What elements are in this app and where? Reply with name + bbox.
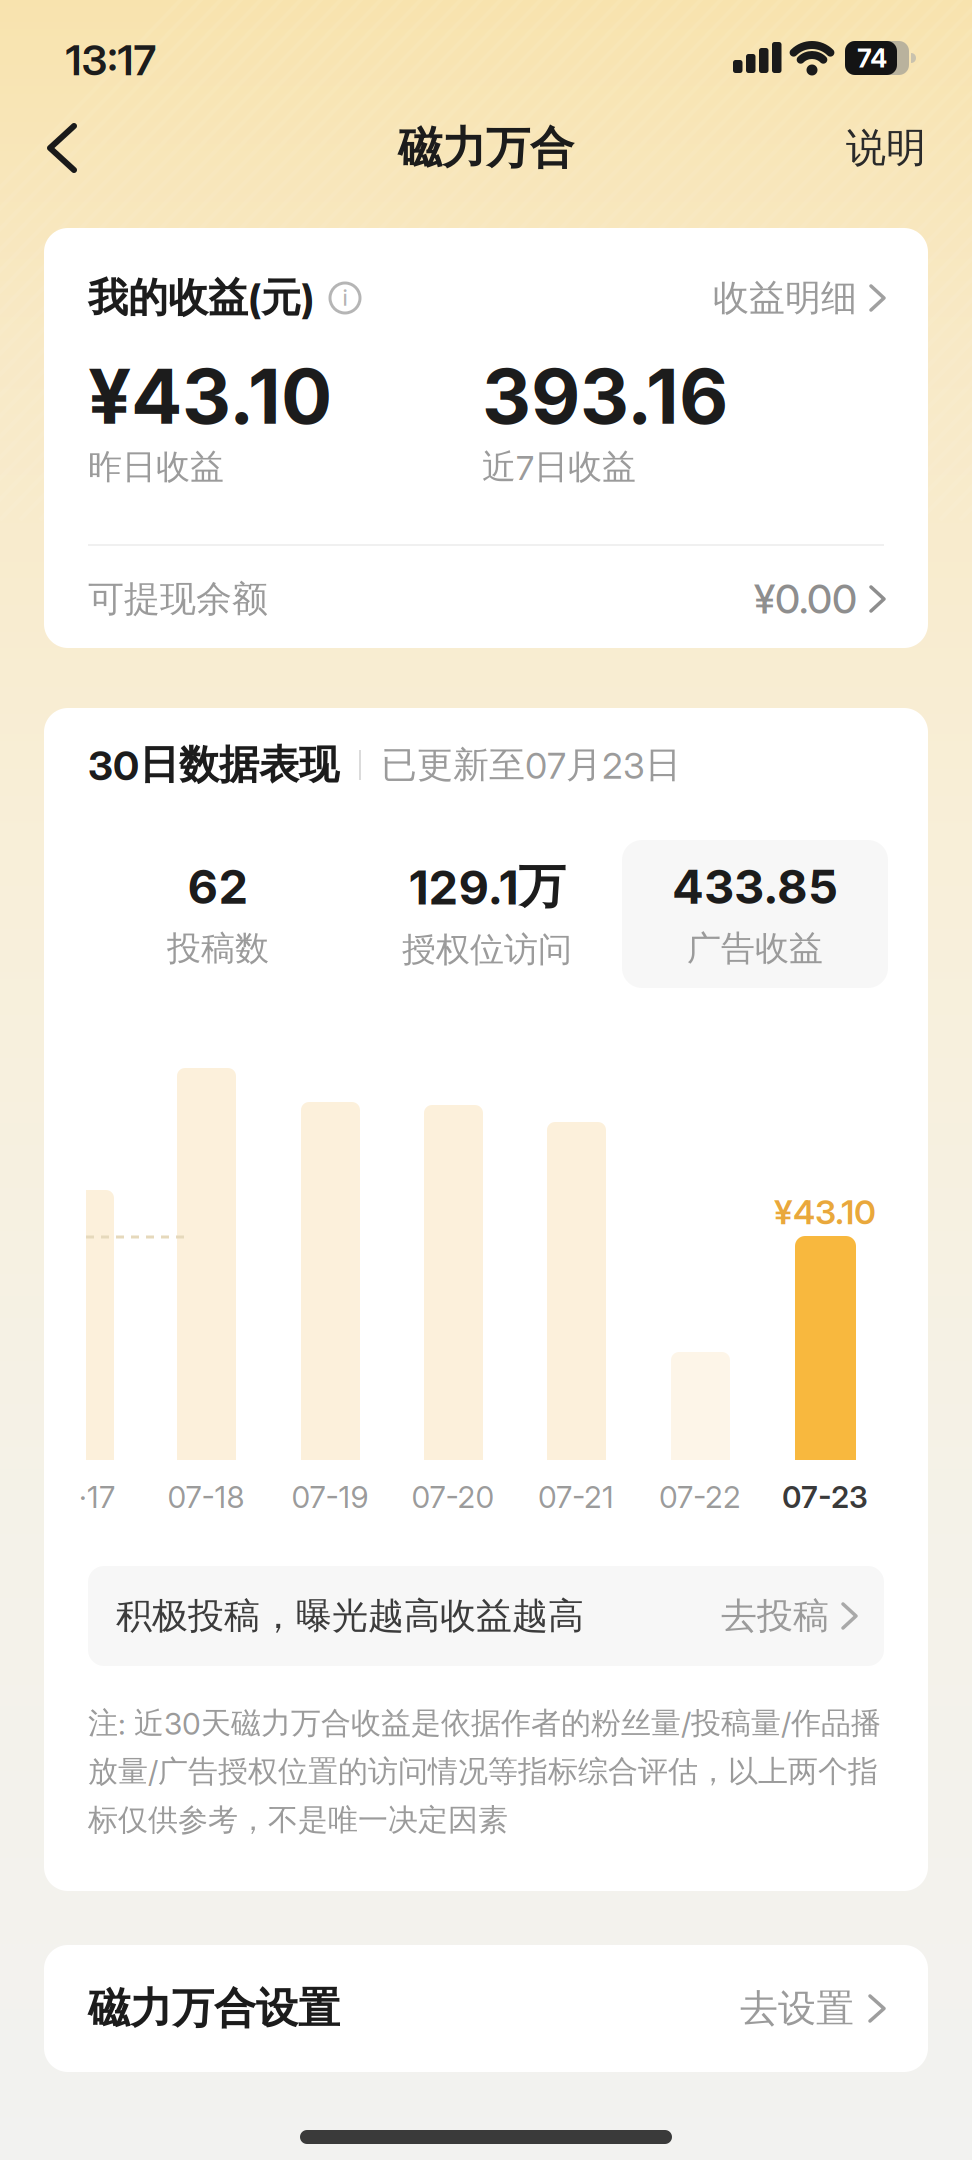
staticText: 07-18 [167, 1479, 244, 1515]
staticText: 说明 [846, 123, 926, 173]
button[interactable]: 磁力万合设置 [44, 1945, 928, 2072]
staticText: 磁力万合设置 [88, 1982, 340, 2035]
staticText: 74 [857, 42, 887, 74]
staticText: ·17 [79, 1479, 115, 1515]
staticText: 07-23 [782, 1479, 868, 1515]
staticText: 授权位访问 [402, 928, 572, 971]
button[interactable]: 说明 [846, 100, 926, 196]
staticText: 注: 近30天磁力万合收益是依据作者的粉丝量/投稿量/作品播 放量/广告授权位置… [88, 1699, 881, 1844]
staticText: 去投稿 [721, 1593, 829, 1639]
staticText: 近7日收益 [482, 446, 636, 488]
button[interactable]: 积极投稿，曝光越高收益越高 [88, 1566, 884, 1666]
staticText: 433.85 [672, 858, 838, 915]
staticText: 62 [187, 858, 248, 915]
staticText: 30日数据表现 [88, 740, 339, 790]
staticText: ¥43.10 [774, 1191, 876, 1232]
staticText: ¥43.10 [88, 350, 332, 442]
staticText: 07-19 [291, 1479, 368, 1515]
button[interactable]: 62 [84, 840, 352, 988]
staticText: 129.1万 [408, 857, 565, 916]
staticText: 13:17 [65, 35, 156, 85]
staticText: ¥0.00 [754, 575, 857, 623]
staticText: 07-21 [538, 1479, 614, 1515]
button[interactable]: 129.1万 [352, 840, 622, 988]
button[interactable]: 收益明细 [713, 275, 884, 321]
staticText: 磁力万合 [398, 120, 574, 176]
button[interactable]: 可提现余额 [44, 577, 928, 621]
button[interactable] [0, 100, 94, 196]
staticText: 已更新至07月23日 [381, 742, 681, 788]
staticText: 去设置 [740, 1985, 854, 2032]
staticText: 积极投稿，曝光越高收益越高 [116, 1593, 584, 1639]
staticText: 收益明细 [713, 275, 857, 321]
staticText: 投稿数 [167, 927, 269, 970]
staticText: 可提现余额 [88, 576, 268, 622]
staticText: 广告收益 [687, 927, 823, 970]
staticText: 393.16 [482, 350, 728, 442]
staticText: 昨日收益 [88, 446, 224, 488]
button[interactable]: 433.85 [622, 840, 888, 988]
staticText: 07-22 [659, 1479, 741, 1515]
staticText: 07-20 [411, 1479, 494, 1515]
staticText: i [342, 285, 347, 311]
staticText: 我的收益(元) [88, 273, 314, 323]
